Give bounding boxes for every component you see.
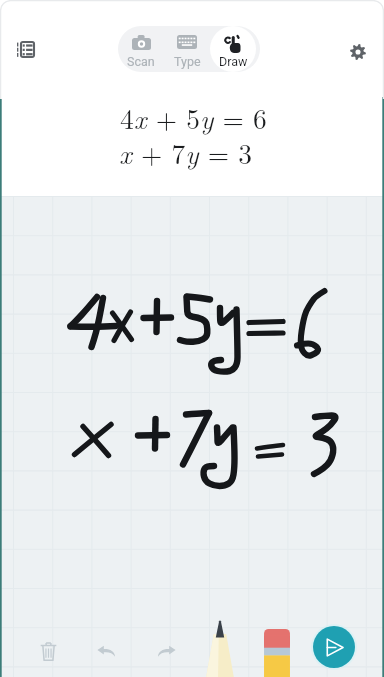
button[interactable]: Settings [336, 27, 380, 71]
button[interactable]: Clear [27, 630, 69, 672]
staticText: x + 7y = 3 [119, 133, 253, 172]
button[interactable]: Submit [313, 626, 355, 668]
button[interactable]: Type [164, 26, 210, 72]
staticText: Scan [127, 54, 155, 69]
button[interactable]: Eraser [259, 629, 295, 677]
staticText: Type [174, 54, 201, 69]
button[interactable]: Undo [85, 630, 127, 672]
button[interactable]: History [3, 27, 47, 71]
button[interactable]: Scan [118, 26, 164, 72]
button[interactable]: Pen [200, 620, 240, 677]
button[interactable]: Draw [210, 26, 256, 72]
staticText: Draw [219, 54, 248, 69]
button[interactable]: Redo [146, 630, 188, 672]
staticText: 4x + 5y = 6 [120, 98, 267, 137]
